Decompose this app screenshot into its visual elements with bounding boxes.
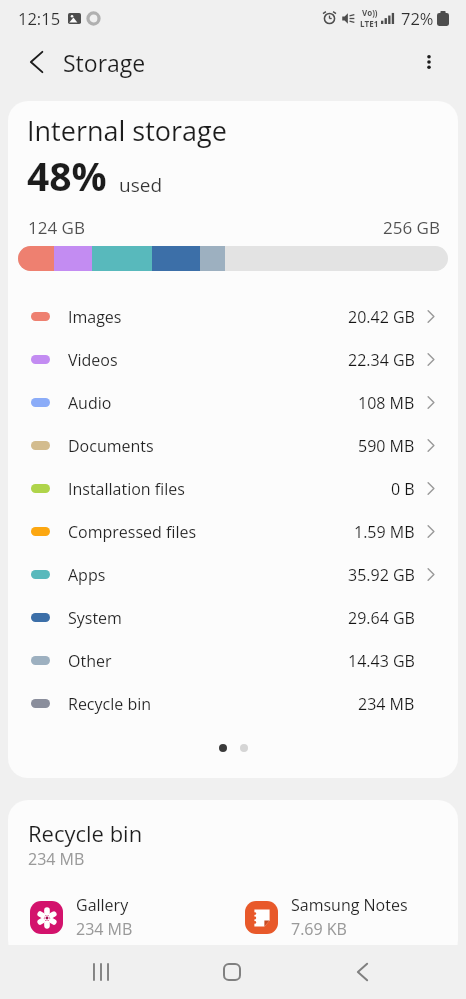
button[interactable]: Images: [8, 295, 458, 338]
button[interactable]: Samsung Notes: [223, 894, 458, 940]
staticText: 108 MB: [358, 392, 415, 414]
button[interactable]: Home: [202, 945, 262, 999]
staticText: 124 GB: [28, 216, 85, 239]
staticText: Documents: [68, 435, 154, 457]
staticText: 590 MB: [358, 435, 415, 457]
staticText: 29.64 GB: [348, 607, 415, 629]
button[interactable]: Documents: [8, 424, 458, 467]
staticText: 256 GB: [383, 216, 440, 239]
button[interactable]: Gallery: [8, 894, 223, 940]
button[interactable]: Videos: [8, 338, 458, 381]
staticText: Installation files: [68, 478, 185, 500]
button[interactable]: Compressed files: [8, 510, 458, 553]
staticText: System: [68, 607, 122, 629]
button[interactable]: More options: [405, 38, 453, 86]
button[interactable]: Apps: [8, 553, 458, 596]
staticText: Other: [68, 650, 112, 672]
staticText: Storage: [63, 47, 146, 78]
button[interactable]: Recycle bin: [8, 682, 458, 725]
staticText: Internal storage: [27, 112, 227, 149]
staticText: 20.42 GB: [348, 306, 415, 328]
staticText: 7.69 KB: [291, 918, 347, 940]
staticText: Apps: [68, 564, 106, 586]
button[interactable]: Recent apps: [71, 945, 131, 999]
staticText: Gallery: [76, 894, 129, 916]
staticText: Recycle bin: [28, 818, 143, 848]
staticText: Audio: [68, 392, 112, 414]
staticText: 72%: [401, 7, 434, 29]
button[interactable]: Navigate up: [12, 38, 60, 86]
staticText: 14.43 GB: [348, 650, 415, 672]
button[interactable]: Installation files: [8, 467, 458, 510]
button[interactable]: Back: [332, 945, 392, 999]
staticText: 12:15: [18, 7, 61, 29]
staticText: 22.34 GB: [348, 349, 415, 371]
button[interactable]: Audio: [8, 381, 458, 424]
staticText: 35.92 GB: [348, 564, 415, 586]
staticText: 48%: [27, 149, 107, 202]
staticText: LTE1: [360, 18, 379, 29]
staticText: used: [119, 172, 163, 198]
staticText: Compressed files: [68, 521, 197, 543]
staticText: Vo)): [362, 7, 378, 18]
staticText: 234 MB: [28, 848, 85, 870]
staticText: Samsung Notes: [291, 894, 408, 916]
staticText: 234 MB: [358, 693, 415, 715]
staticText: 1.59 MB: [354, 521, 415, 543]
staticText: Images: [68, 306, 122, 328]
staticText: 0 B: [391, 478, 415, 500]
button[interactable]: Other: [8, 639, 458, 682]
staticText: Recycle bin: [68, 693, 152, 715]
staticText: Videos: [68, 349, 118, 371]
staticText: 234 MB: [76, 918, 133, 940]
button[interactable]: System: [8, 596, 458, 639]
